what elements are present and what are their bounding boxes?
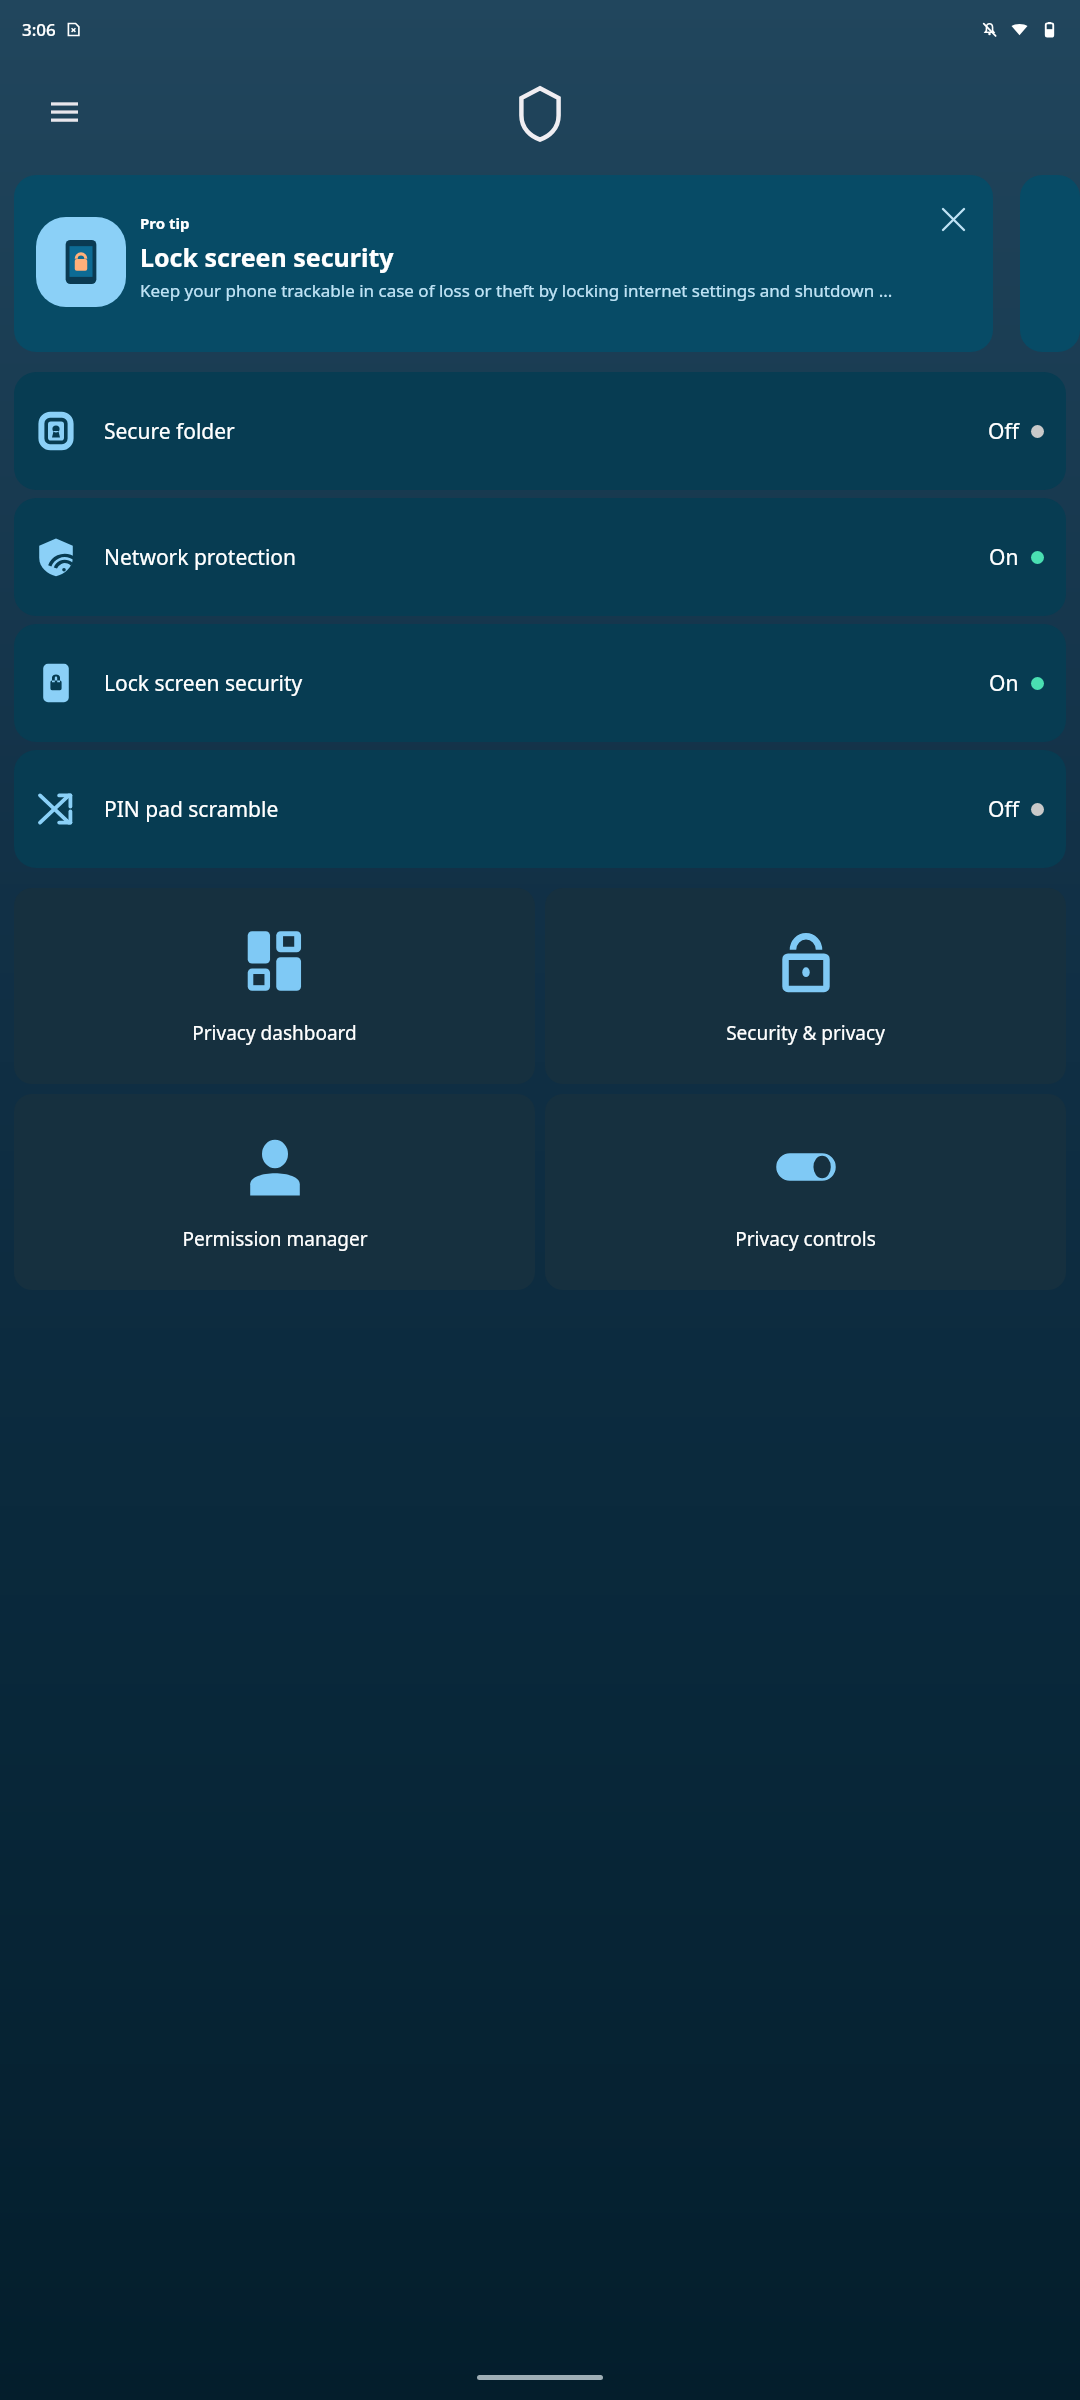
staticText: Secure folder [104,417,235,446]
button[interactable]: Network protection [14,498,1066,616]
button[interactable]: Secure folder [14,372,1066,490]
staticText: Network protection [104,543,297,572]
button[interactable]: PIN pad scramble [14,750,1066,868]
staticText: Lock screen security [140,240,394,274]
button[interactable]: Lock screen security [14,624,1066,742]
staticText: Pro tip [140,213,190,233]
button[interactable]: Pro tip [14,175,993,352]
staticText: On [989,543,1019,572]
button[interactable]: Menu [42,89,86,133]
button[interactable]: Security & privacy [545,888,1066,1084]
staticText: Security & privacy [726,1020,885,1046]
staticText: Privacy dashboard [192,1020,357,1046]
staticText: PIN pad scramble [104,795,279,824]
staticText: On [989,669,1019,698]
staticText: Privacy controls [735,1226,876,1252]
staticText: Off [988,795,1019,824]
button[interactable]: Privacy dashboard [14,888,535,1084]
button[interactable]: Permission manager [14,1094,535,1290]
button[interactable]: Privacy controls [545,1094,1066,1290]
button[interactable]: Dismiss [931,197,975,241]
staticText: Keep your phone trackable in case of los… [140,279,893,302]
staticText: 3:06 [22,18,56,41]
staticText: Permission manager [182,1226,368,1252]
staticText: Off [988,417,1019,446]
staticText: Lock screen security [104,669,303,698]
